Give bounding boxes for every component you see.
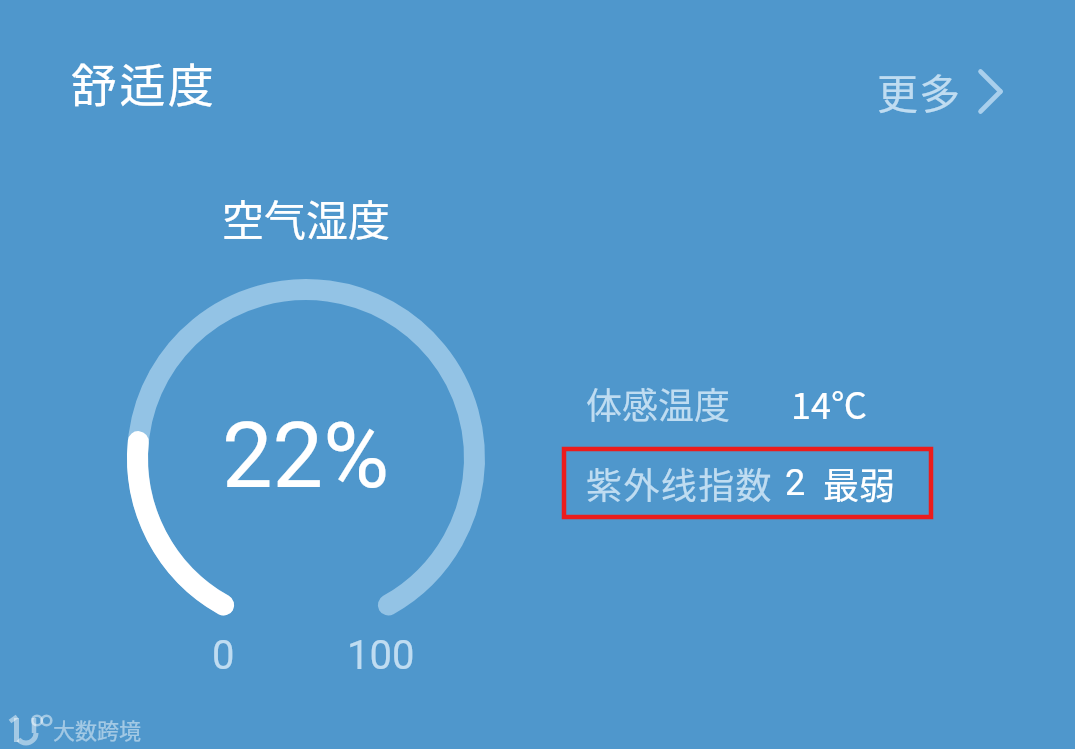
staticText: 舒适度 — [71, 49, 217, 116]
button[interactable]: 紫外线指数 — [586, 457, 935, 509]
other: More comfort details — [978, 69, 1003, 114]
other: Air humidity 22 percent — [127, 279, 485, 637]
button[interactable]: 体感温度 — [586, 377, 935, 429]
staticText: 体感温度 — [586, 377, 731, 429]
staticText: 100 — [347, 632, 415, 679]
staticText: 空气湿度 — [222, 187, 391, 248]
staticText: 更多 — [877, 61, 962, 120]
staticText: 22% — [222, 404, 390, 509]
button[interactable]: 更多 — [869, 55, 1011, 126]
staticText: 14℃ — [791, 377, 867, 429]
staticText: 大数跨境 — [53, 713, 142, 745]
staticText: 2 — [785, 462, 806, 504]
staticText: 紫外线指数 — [586, 457, 774, 509]
staticText: 0 — [212, 632, 235, 679]
staticText: 最弱 — [823, 457, 896, 509]
